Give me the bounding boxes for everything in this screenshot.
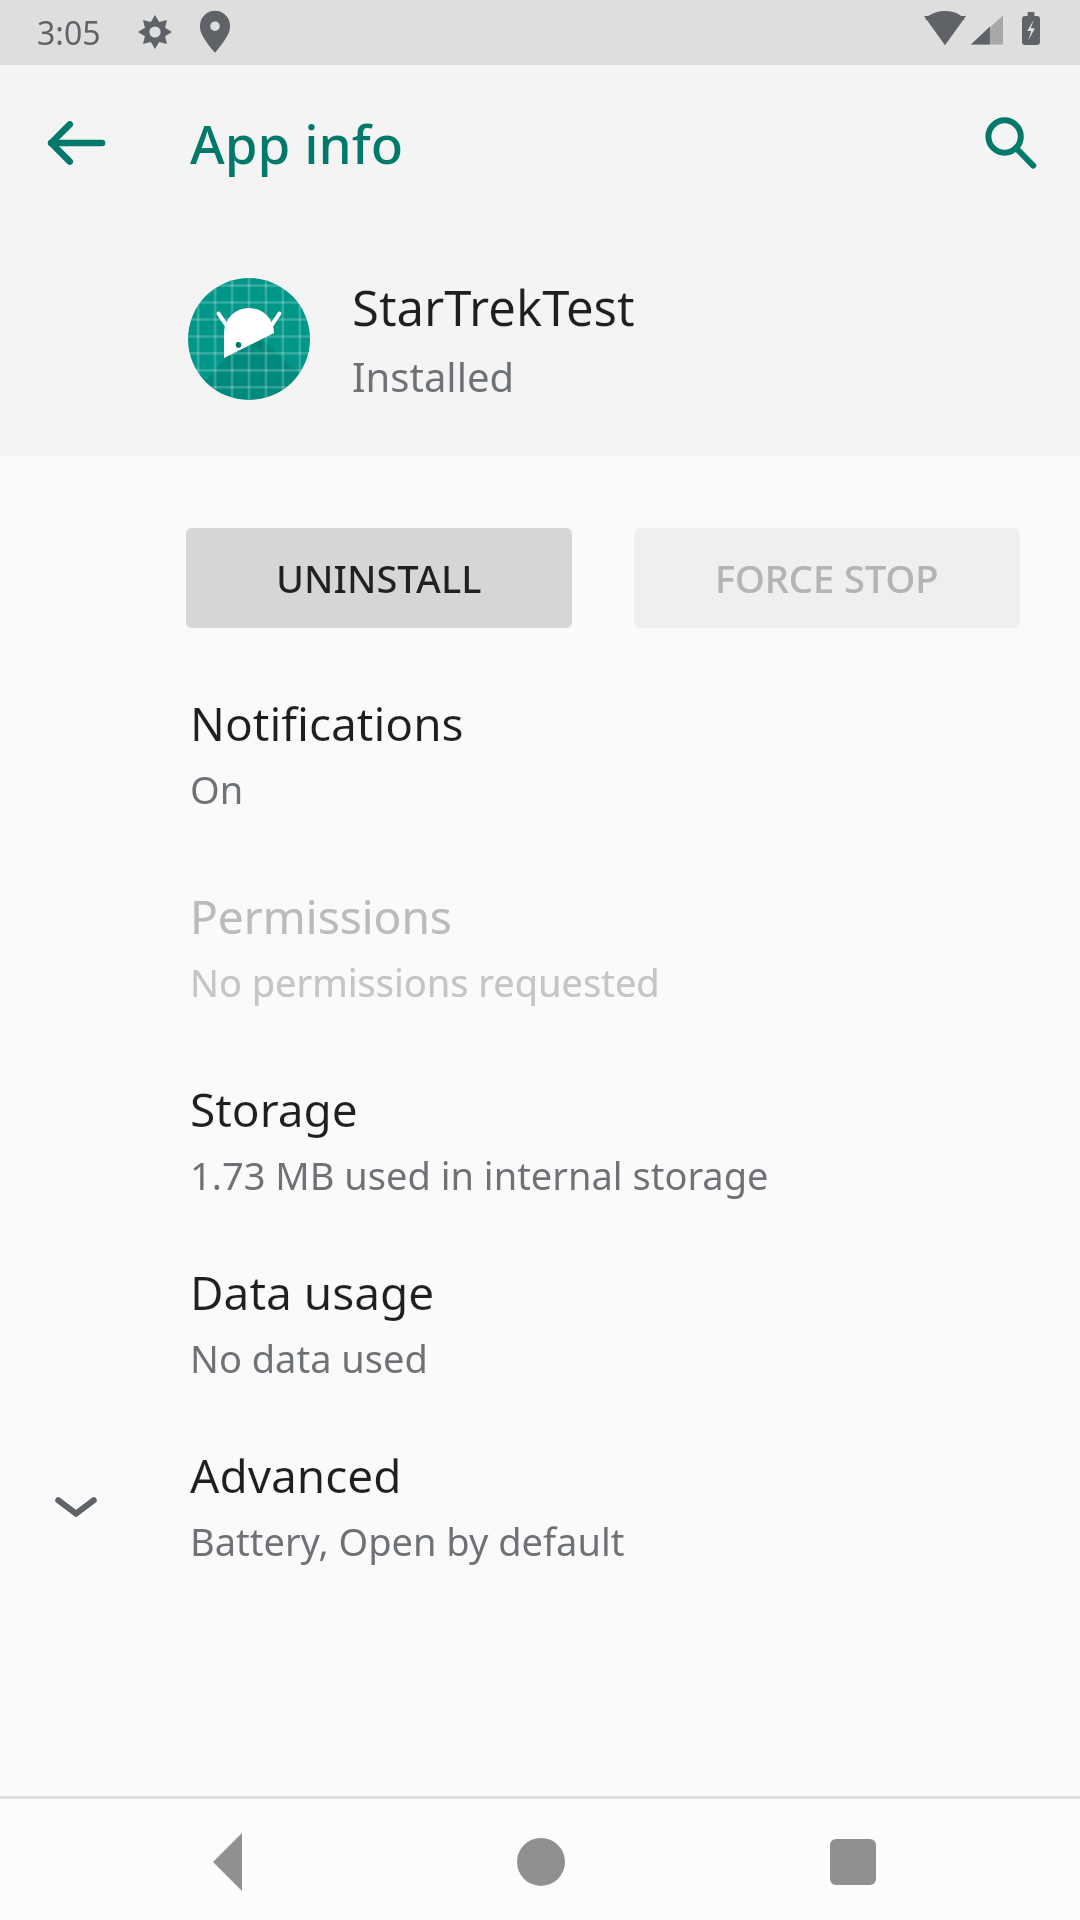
staticText: StarTrekTest xyxy=(352,274,635,341)
staticText: Storage xyxy=(190,1078,358,1141)
button[interactable]: UNINSTALL xyxy=(186,528,572,628)
button[interactable]: Advanced xyxy=(0,1444,1080,1567)
staticText: Permissions xyxy=(190,885,452,948)
button[interactable]: Storage xyxy=(0,1078,1080,1201)
staticText: 1.73 MB used in internal storage xyxy=(190,1149,769,1201)
staticText: Advanced xyxy=(190,1444,402,1507)
staticText: Installed xyxy=(352,349,515,403)
staticText: Notifications xyxy=(190,692,464,755)
staticText: No permissions requested xyxy=(190,956,660,1008)
staticText: Data usage xyxy=(190,1261,435,1324)
button[interactable]: Data usage xyxy=(0,1261,1080,1384)
staticText: App info xyxy=(190,107,404,179)
staticText: On xyxy=(190,763,244,815)
staticText: Battery, Open by default xyxy=(190,1515,625,1567)
button[interactable]: Back xyxy=(28,95,124,191)
staticText: 3:05 xyxy=(37,11,101,55)
button[interactable]: Permissions xyxy=(0,885,1080,1008)
staticText: No data used xyxy=(190,1332,428,1384)
button[interactable]: Notifications xyxy=(0,692,1080,815)
button[interactable]: FORCE STOP xyxy=(634,528,1020,628)
staticText: UNINSTALL xyxy=(276,552,482,604)
button[interactable]: Search xyxy=(962,95,1058,191)
staticText: FORCE STOP xyxy=(715,552,939,604)
